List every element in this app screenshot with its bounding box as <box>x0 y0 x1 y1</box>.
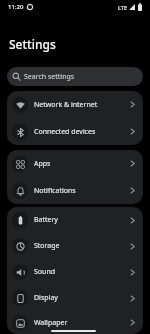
button[interactable]: Search settings <box>7 67 143 86</box>
staticText: LTE <box>118 4 127 11</box>
staticText: Settings <box>9 36 56 52</box>
button[interactable]: Sound <box>7 259 143 285</box>
staticText: Notifications <box>34 186 76 196</box>
staticText: Sound <box>34 267 56 277</box>
button[interactable]: Connected devices <box>7 118 143 145</box>
button[interactable]: Battery <box>7 207 143 233</box>
button[interactable]: Wallpaper <box>7 311 143 334</box>
button[interactable]: Display <box>7 285 143 311</box>
button[interactable]: Network & internet <box>7 91 143 118</box>
staticText: Apps <box>34 159 51 169</box>
staticText: 11:20 <box>8 3 24 11</box>
staticText: Wallpaper <box>34 318 68 328</box>
staticText: Search settings <box>24 72 75 82</box>
staticText: Display <box>34 293 58 303</box>
button[interactable]: Notifications <box>7 177 143 204</box>
button[interactable]: Storage <box>7 233 143 259</box>
staticText: Battery <box>34 215 58 225</box>
staticText: Storage <box>34 241 60 251</box>
button[interactable]: Apps <box>7 150 143 177</box>
staticText: Connected devices <box>34 127 96 137</box>
staticText: Network & internet <box>34 100 98 110</box>
